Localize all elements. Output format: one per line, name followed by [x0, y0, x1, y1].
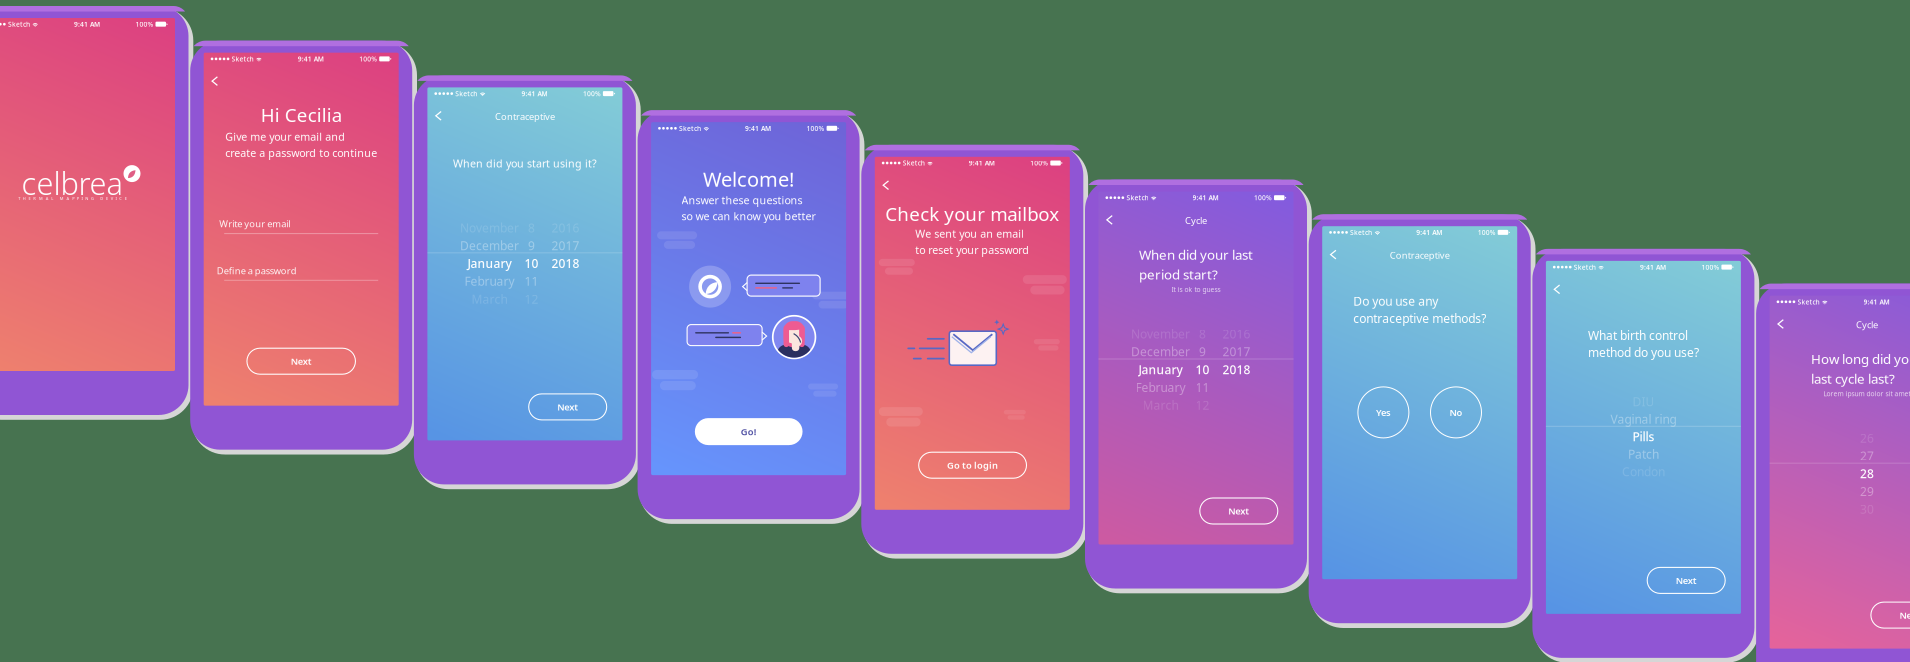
- staticText: Next: [1676, 574, 1697, 587]
- staticText: 27: [1860, 448, 1874, 464]
- staticText: Go!: [741, 425, 757, 438]
- button[interactable]: Next: [247, 348, 355, 374]
- staticText: December: [1131, 344, 1190, 360]
- staticText: March: [1142, 397, 1178, 413]
- staticText: Patch: [1628, 446, 1659, 462]
- staticText: T H E R M A L M A P P I N G D E V I C E: [18, 196, 127, 201]
- staticText: 100%: [807, 124, 825, 133]
- staticText: 9:41 AM: [298, 54, 324, 63]
- staticText: Lorem ipsum dolor sit amet: [1824, 389, 1910, 398]
- staticText: Cycle: [1185, 214, 1207, 227]
- staticText: 11: [1195, 379, 1209, 395]
- staticText: Sketch: [1126, 193, 1148, 202]
- staticText: November: [1131, 326, 1190, 342]
- staticText: 8: [1199, 326, 1206, 342]
- staticText: 9:41 AM: [1416, 228, 1442, 237]
- staticText: Yes: [1376, 406, 1391, 419]
- staticText: Sketch: [8, 20, 30, 29]
- staticText: 26: [1860, 430, 1874, 446]
- staticText: It is ok to guess: [1171, 285, 1220, 294]
- staticText: February: [1135, 379, 1185, 395]
- staticText: 9:41 AM: [745, 124, 771, 133]
- button[interactable]: Back: [211, 76, 224, 89]
- button[interactable]: Next: [1647, 567, 1725, 593]
- staticText: 100%: [1478, 228, 1496, 237]
- staticText: Sketch: [679, 124, 701, 133]
- staticText: 100%: [583, 89, 601, 98]
- staticText: 9:41 AM: [74, 20, 100, 29]
- staticText: Condon: [1622, 464, 1665, 480]
- staticText: Welcome!: [703, 166, 794, 192]
- button[interactable]: Next: [1200, 498, 1278, 524]
- staticText: 100%: [135, 20, 153, 29]
- staticText: Sketch: [1574, 263, 1596, 272]
- staticText: Hi Cecilia: [261, 102, 342, 127]
- staticText: 2016: [1222, 326, 1250, 342]
- staticText: 8: [528, 220, 535, 236]
- staticText: 9: [528, 238, 535, 253]
- staticText: When did your last period start?: [1139, 246, 1253, 283]
- staticText: DIU: [1632, 394, 1654, 410]
- button[interactable]: No: [1430, 387, 1481, 438]
- button[interactable]: Back: [882, 180, 895, 193]
- staticText: Write your email: [219, 217, 290, 230]
- staticText: What birth control method do you use?: [1588, 327, 1699, 360]
- staticText: Next: [291, 355, 312, 367]
- staticText: 2017: [551, 238, 579, 253]
- staticText: No: [1449, 406, 1462, 419]
- button[interactable]: Back: [1106, 215, 1119, 228]
- staticText: Sketch: [903, 159, 925, 167]
- button[interactable]: Back: [1554, 284, 1567, 297]
- button[interactable]: Back: [435, 111, 448, 124]
- button[interactable]: Back: [1330, 250, 1343, 263]
- button[interactable]: Yes: [1358, 387, 1409, 438]
- staticText: 9: [1199, 344, 1206, 360]
- staticText: 2018: [551, 255, 579, 271]
- staticText: celbrea: [21, 163, 122, 203]
- staticText: 30: [1860, 501, 1874, 517]
- staticText: 2017: [1222, 344, 1250, 360]
- staticText: 2016: [551, 220, 579, 236]
- staticText: March: [471, 291, 507, 307]
- staticText: 9:41 AM: [1192, 193, 1218, 202]
- staticText: 100%: [1030, 159, 1048, 167]
- staticText: Sketch: [455, 89, 477, 98]
- staticText: 9:41 AM: [969, 159, 995, 167]
- staticText: February: [464, 273, 514, 289]
- staticText: 9:41 AM: [1864, 297, 1890, 306]
- staticText: Sketch: [1797, 297, 1819, 306]
- staticText: 10: [524, 255, 538, 271]
- staticText: We sent you an email to reset your passw…: [915, 227, 1029, 257]
- staticText: January: [467, 255, 511, 271]
- staticText: When did you start using it?: [453, 156, 597, 170]
- staticText: Sketch: [1350, 228, 1372, 237]
- staticText: Next: [1899, 609, 1910, 621]
- staticText: Vaginal ring: [1610, 411, 1676, 427]
- staticText: 100%: [1254, 193, 1272, 202]
- button[interactable]: Next: [1871, 602, 1910, 628]
- staticText: Next: [557, 401, 578, 413]
- staticText: Give me your email and create a password…: [225, 129, 377, 160]
- staticText: 12: [1195, 397, 1209, 413]
- staticText: Do you use any contraceptive methods?: [1353, 293, 1486, 326]
- staticText: 28: [1860, 466, 1874, 481]
- staticText: Sketch: [232, 54, 254, 63]
- staticText: 9:41 AM: [521, 89, 547, 98]
- staticText: 100%: [359, 54, 377, 63]
- button[interactable]: Go!: [695, 418, 802, 445]
- staticText: 10: [1195, 361, 1209, 377]
- staticText: 100%: [1701, 263, 1719, 272]
- staticText: 12: [524, 291, 538, 307]
- staticText: Go to login: [947, 459, 998, 471]
- staticText: Contraceptive: [495, 110, 555, 123]
- staticText: 11: [524, 273, 538, 289]
- staticText: Define a password: [217, 264, 297, 277]
- staticText: 2018: [1222, 361, 1250, 377]
- button[interactable]: Back: [1777, 319, 1790, 332]
- button[interactable]: Go to login: [919, 452, 1026, 478]
- staticText: Answer these questions so we can know yo…: [682, 193, 816, 223]
- staticText: How long did your last cycle last?: [1811, 350, 1910, 387]
- button[interactable]: Next: [529, 394, 607, 420]
- staticText: 29: [1860, 483, 1874, 499]
- staticText: Check your mailbox: [885, 201, 1059, 226]
